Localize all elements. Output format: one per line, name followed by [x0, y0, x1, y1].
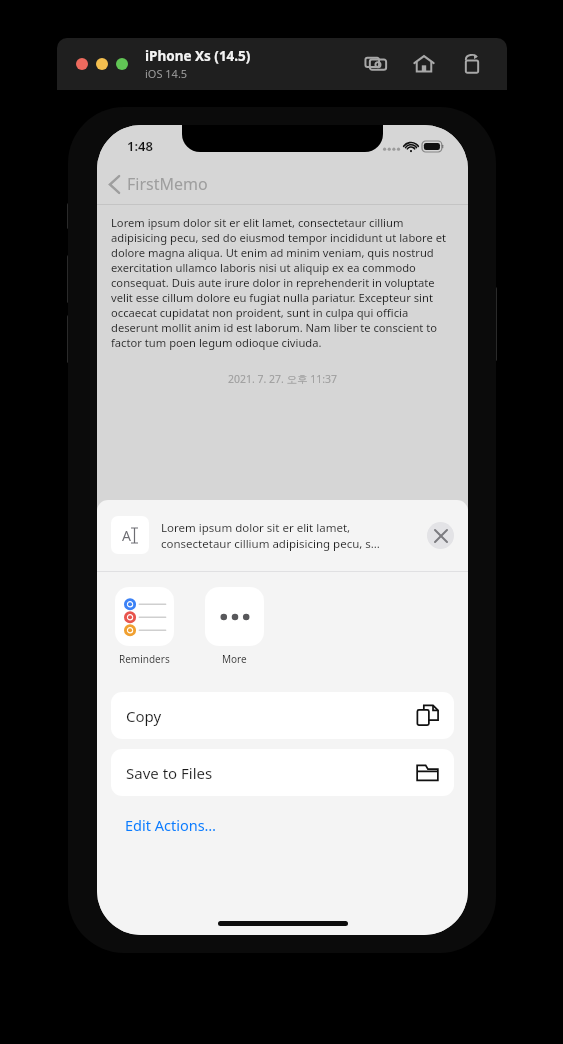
button[interactable]: Minimize	[96, 58, 108, 70]
button[interactable]: Home	[411, 51, 437, 77]
button[interactable]: More	[201, 587, 267, 666]
button[interactable]: Close	[427, 522, 454, 549]
button[interactable]: Reminders	[111, 587, 177, 666]
staticText: Reminders	[119, 652, 170, 666]
staticText: iOS 14.5	[145, 66, 188, 81]
staticText: Save to Files	[126, 763, 416, 783]
button[interactable]: FirstMemo	[105, 169, 212, 199]
staticText: Edit Actions…	[125, 815, 217, 835]
staticText: Lorem ipsum dolor sit er elit lamet, con…	[161, 520, 419, 551]
button[interactable]: Rotate	[459, 51, 485, 77]
button[interactable]: Close	[76, 58, 88, 70]
staticText: Copy	[126, 706, 416, 726]
staticText: More	[222, 652, 247, 666]
button[interactable]: Save to Files	[111, 749, 454, 796]
staticText: FirstMemo	[127, 173, 208, 195]
staticText: A	[122, 526, 131, 545]
button[interactable]: Screenshot	[363, 51, 389, 77]
button[interactable]: A	[97, 509, 468, 561]
staticText: 2021. 7. 27. 오후 11:37	[111, 372, 454, 386]
staticText: iPhone Xs (14.5)	[145, 47, 251, 65]
button[interactable]: Copy	[111, 692, 454, 739]
button[interactable]: Zoom	[116, 58, 128, 70]
button[interactable]: Edit Actions…	[111, 808, 231, 842]
staticText: 1:48	[127, 137, 153, 155]
staticText: Lorem ipsum dolor sit er elit lamet, con…	[111, 215, 454, 350]
